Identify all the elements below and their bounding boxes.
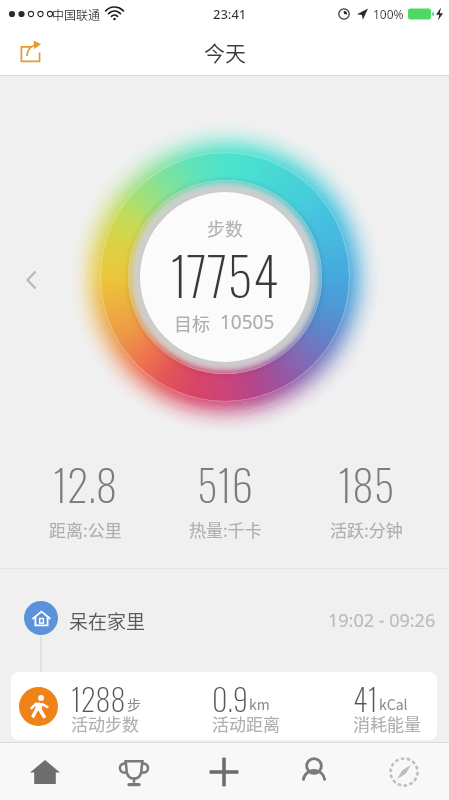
staticText: 19:02 - 09:26 [328,608,436,633]
button[interactable]: Profile [269,743,359,800]
staticText: km [249,694,270,714]
button[interactable]: At home [24,601,58,635]
button[interactable]: 12.8 [15,452,155,542]
staticText: kCal [379,694,408,714]
staticText: 中国联通 [52,6,101,23]
staticText: 23:41 [213,5,247,23]
staticText: 100% [373,6,404,22]
staticText: 185 [338,452,395,516]
button[interactable]: 516 [155,452,295,542]
button[interactable]: Share [10,31,52,73]
staticText: 0.9 [212,676,248,720]
staticText: 今天 [204,37,246,67]
staticText: 步 [127,694,141,714]
button[interactable]: Previous day [17,263,47,293]
staticText: 12.8 [53,452,118,516]
staticText: 10505 [220,309,275,335]
staticText: 活动步数 [71,711,139,736]
staticText: 消耗能量 [353,711,421,736]
staticText: 活动距离 [212,711,280,736]
button[interactable]: Add [179,743,269,800]
staticText: 步数 [207,215,243,241]
button[interactable]: 1288 [11,672,437,740]
staticText: 热量:千卡 [189,517,262,542]
staticText: 活跃:分钟 [330,517,403,542]
staticText: 41 [353,676,378,720]
staticText: 516 [197,452,254,516]
button[interactable]: 185 [296,452,436,542]
staticText: 目标 [174,310,210,336]
button[interactable]: Discover [359,743,449,800]
staticText: 距离:公里 [49,517,122,542]
staticText: 17754 [170,235,279,314]
button[interactable]: Awards [89,743,179,800]
staticText: 1288 [71,676,126,720]
button[interactable]: Home [0,743,89,800]
staticText: 呆在家里 [69,607,146,635]
